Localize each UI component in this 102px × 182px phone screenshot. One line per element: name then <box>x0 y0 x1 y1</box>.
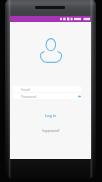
staticText: Password <box>21 94 37 99</box>
other: Show password <box>78 95 81 98</box>
staticText: Email <box>21 87 30 92</box>
staticText: Forgot password? <box>42 129 60 133</box>
button[interactable]: Log in <box>37 111 65 121</box>
staticText: Log in <box>45 113 57 119</box>
button[interactable]: Password <box>13 93 81 99</box>
button[interactable]: Email <box>13 86 81 92</box>
button[interactable]: Forgot password? <box>38 127 64 135</box>
